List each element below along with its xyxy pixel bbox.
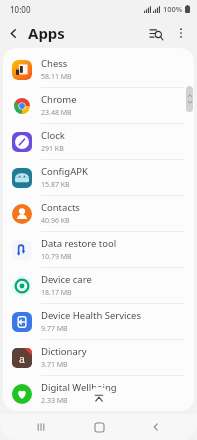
- staticText: Dictionary: [41, 345, 87, 358]
- button[interactable]: ConfigAPK: [3, 160, 194, 196]
- button[interactable]: Data restore tool: [3, 232, 194, 268]
- button[interactable]: Chess: [3, 52, 194, 88]
- staticText: 40.96 KB: [41, 216, 70, 226]
- button[interactable]: Device care: [3, 268, 194, 304]
- button[interactable]: Back: [139, 414, 173, 440]
- button[interactable]: Device Health Services: [3, 304, 194, 340]
- staticText: 18.17 MB: [41, 288, 72, 298]
- button[interactable]: Home: [82, 414, 116, 440]
- staticText: 100%: [163, 4, 183, 14]
- button[interactable]: Chrome: [3, 88, 194, 124]
- staticText: Digital Wellbeing: [41, 381, 117, 394]
- staticText: Chrome: [41, 93, 77, 106]
- button[interactable]: Clock: [3, 124, 194, 160]
- staticText: 23.48 MB: [41, 108, 72, 118]
- staticText: 10.79 MB: [41, 252, 72, 262]
- button[interactable]: Search: [143, 20, 169, 46]
- staticText: 291 KB: [41, 144, 64, 154]
- staticText: 2.33 MB: [41, 396, 68, 406]
- staticText: 15.87 KB: [41, 180, 70, 190]
- button[interactable]: Fast scroll: [186, 86, 193, 112]
- staticText: Apps: [28, 23, 65, 43]
- staticText: Clock: [41, 129, 65, 142]
- staticText: Device care: [41, 273, 92, 286]
- button[interactable]: Scroll to top: [88, 387, 110, 409]
- staticText: 9.77 MB: [41, 324, 68, 334]
- staticText: 3.71 MB: [41, 360, 68, 370]
- button[interactable]: Contacts: [3, 196, 194, 232]
- staticText: Data restore tool: [41, 237, 117, 250]
- button[interactable]: Digital Wellbeing: [3, 376, 194, 411]
- staticText: 58.11 MB: [41, 72, 72, 82]
- button[interactable]: Recents: [24, 414, 58, 440]
- button[interactable]: More options: [169, 21, 193, 45]
- staticText: Device Health Services: [41, 309, 141, 322]
- staticText: Chess: [41, 57, 68, 70]
- staticText: 10:00: [10, 4, 31, 15]
- button[interactable]: Back: [0, 20, 26, 46]
- staticText: ConfigAPK: [41, 165, 88, 178]
- staticText: Contacts: [41, 201, 80, 214]
- button[interactable]: a: [3, 340, 194, 376]
- staticText: a: [19, 351, 26, 366]
